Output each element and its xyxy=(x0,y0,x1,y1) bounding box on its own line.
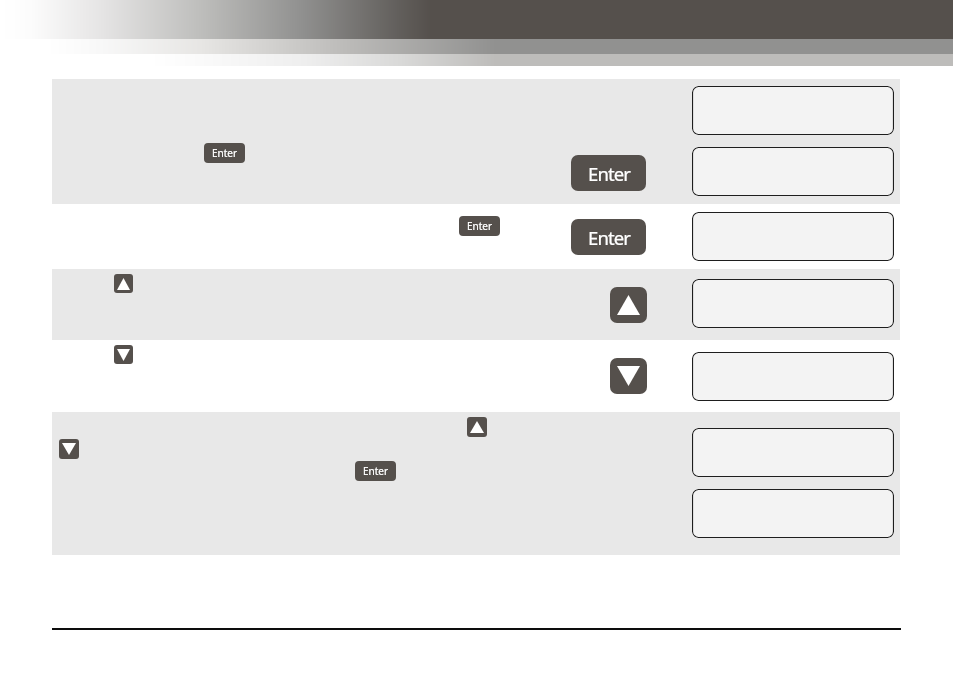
button[interactable] xyxy=(692,279,894,328)
button[interactable]: Up xyxy=(610,287,647,323)
staticText: Enter xyxy=(212,146,238,160)
button[interactable] xyxy=(692,489,894,538)
button[interactable]: Enter xyxy=(355,461,396,481)
button[interactable] xyxy=(692,428,894,477)
button[interactable]: Up xyxy=(114,274,133,293)
button[interactable]: Enter xyxy=(459,216,500,236)
button[interactable] xyxy=(692,212,894,261)
button[interactable] xyxy=(692,147,894,196)
button[interactable]: Down xyxy=(610,358,647,394)
button[interactable]: Down xyxy=(59,439,79,459)
button[interactable] xyxy=(692,86,894,135)
staticText: Enter xyxy=(588,161,630,186)
button[interactable]: Down xyxy=(114,345,133,364)
button[interactable]: Enter xyxy=(571,155,646,191)
button[interactable]: Enter xyxy=(571,219,646,255)
staticText: Enter xyxy=(588,225,630,250)
button[interactable] xyxy=(692,352,894,401)
staticText: Enter xyxy=(363,464,389,478)
button[interactable]: Enter xyxy=(204,143,245,163)
button[interactable]: Up xyxy=(467,417,487,437)
staticText: Enter xyxy=(467,219,493,233)
